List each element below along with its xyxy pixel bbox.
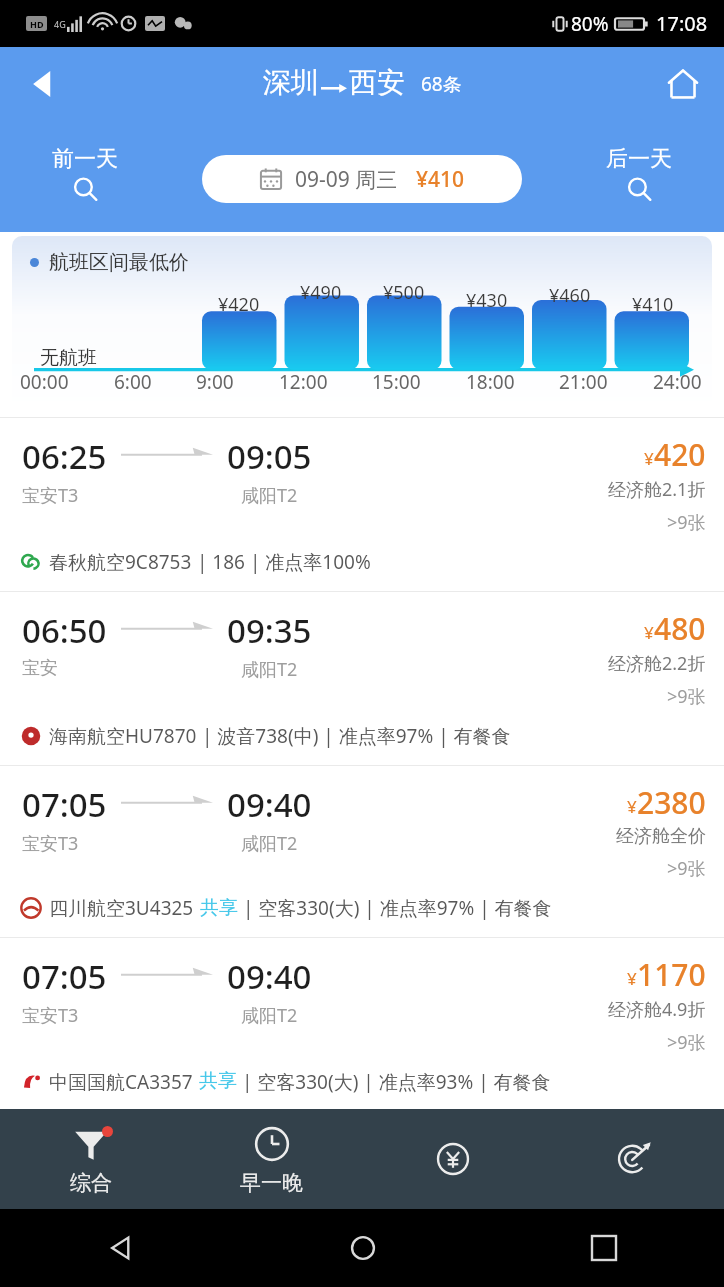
staticText: 海南航空HU7870 (49, 723, 197, 749)
staticText: 经济舱2.2折 (608, 651, 706, 676)
staticText: 四川航空3U4325 (49, 895, 194, 921)
staticText: 07:05 (22, 782, 107, 827)
staticText: ¥ (627, 795, 637, 818)
staticText: >9张 (667, 1030, 706, 1055)
staticText: 1170 (637, 954, 706, 995)
staticText: 后一天 (606, 145, 672, 173)
staticText: 09-09 周三 (295, 165, 398, 194)
button[interactable]: Price sort (362, 1109, 543, 1209)
staticText: 中国国航CA3357 (49, 1069, 193, 1093)
staticText: | 空客330(大) | 准点率97% | 有餐食 (238, 895, 552, 921)
button[interactable]: 09-09 周三 (202, 155, 522, 203)
button[interactable]: 前一天 (52, 145, 118, 202)
staticText: 咸阳T2 (241, 831, 298, 856)
staticText: 早一晚 (240, 1170, 303, 1196)
staticText: 68条 (421, 71, 462, 97)
other: Home (350, 1235, 376, 1261)
staticText: 06:25 (22, 434, 107, 479)
staticText: ¥ (644, 621, 654, 644)
button[interactable]: 07:05 (0, 937, 724, 1109)
staticText: 经济舱2.1折 (608, 477, 706, 502)
staticText: 06:50 (22, 608, 107, 653)
staticText: 咸阳T2 (241, 657, 298, 682)
staticText: 经济舱4.9折 (608, 997, 706, 1022)
other: Recents (592, 1236, 616, 1260)
button[interactable]: 06:25 (0, 417, 724, 591)
staticText: 09:05 (227, 434, 312, 479)
staticText: ¥410 (632, 292, 674, 317)
staticText: 深圳 (263, 65, 319, 100)
staticText: HD (30, 18, 44, 30)
staticText: 18:00 (466, 369, 515, 395)
staticText: 6:00 (114, 369, 152, 395)
staticText: 宝安T3 (22, 1003, 79, 1028)
staticText: 共享 (200, 896, 238, 920)
staticText: ¥410 (416, 165, 465, 194)
staticText: 21:00 (559, 369, 608, 395)
staticText: 咸阳T2 (241, 1003, 298, 1028)
button[interactable]: Recommend (543, 1109, 724, 1209)
button[interactable]: 后一天 (606, 145, 672, 202)
staticText: ¥500 (383, 280, 425, 305)
staticText: 2380 (637, 782, 706, 823)
staticText: 00:00 (20, 369, 69, 395)
button[interactable]: 07:05 (0, 765, 724, 937)
button[interactable]: 综合 (0, 1109, 181, 1209)
staticText: >9张 (667, 684, 706, 709)
staticText: >9张 (667, 856, 706, 881)
button[interactable]: Home (656, 57, 710, 111)
staticText: 80% (571, 11, 609, 37)
button[interactable]: 06:50 (0, 591, 724, 765)
other: Back (108, 1235, 134, 1261)
staticText: ¥430 (466, 288, 508, 313)
staticText: | 空客330(大) | 准点率93% | 有餐食 (237, 1069, 551, 1093)
staticText: 09:40 (227, 954, 312, 999)
staticText: 17:08 (656, 10, 708, 37)
staticText: 420 (654, 434, 706, 475)
staticText: 480 (654, 608, 706, 649)
staticText: 15:00 (372, 369, 421, 395)
staticText: 宝安T3 (22, 831, 79, 856)
staticText: ¥ (644, 447, 654, 470)
staticText: ¥420 (218, 292, 260, 317)
staticText: 9:00 (196, 369, 234, 395)
staticText: ¥ (627, 967, 637, 990)
staticText: 无航班 (40, 346, 97, 370)
staticText: 经济舱全价 (616, 825, 706, 848)
staticText: 航班区间最低价 (49, 250, 189, 275)
staticText: 07:05 (22, 954, 107, 999)
staticText: | 186 | 准点率100% (192, 549, 371, 575)
staticText: >9张 (667, 510, 706, 535)
staticText: ¥490 (300, 280, 342, 305)
staticText: 共享 (199, 1069, 237, 1093)
staticText: 4G (54, 18, 66, 30)
button[interactable]: 早一晚 (181, 1109, 362, 1209)
staticText: 12:00 (279, 369, 328, 395)
staticText: 西安 (349, 65, 405, 100)
staticText: 09:35 (227, 608, 312, 653)
staticText: 咸阳T2 (241, 483, 298, 508)
staticText: ¥460 (549, 283, 591, 308)
staticText: 24:00 (653, 369, 702, 395)
staticText: 春秋航空9C8753 (49, 549, 192, 575)
button[interactable]: Back (14, 55, 72, 113)
staticText: 综合 (70, 1170, 112, 1196)
staticText: 宝安T3 (22, 483, 79, 508)
staticText: 前一天 (52, 145, 118, 173)
staticText: 09:40 (227, 782, 312, 827)
staticText: 宝安 (22, 657, 58, 680)
staticText: | 波音738(中) | 准点率97% | 有餐食 (197, 723, 511, 749)
